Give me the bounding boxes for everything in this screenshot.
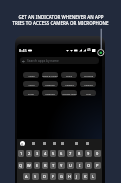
button[interactable]: 2: [26, 150, 32, 157]
staticText: Google Meet: [62, 92, 77, 95]
staticText: 4: [44, 151, 47, 156]
staticText: 6: [60, 151, 63, 156]
staticText: Alarm: [28, 74, 35, 77]
staticText: 8: [78, 151, 81, 156]
button[interactable]: Camera: [61, 81, 77, 87]
staticText: 0: [96, 151, 99, 156]
staticText: P: [96, 163, 99, 168]
staticText: L: [92, 174, 95, 179]
staticText: S: [34, 174, 37, 179]
button[interactable]: I: [76, 162, 83, 169]
staticText: W: [27, 163, 31, 168]
staticText: Black & White: [42, 74, 58, 77]
button[interactable]: Alarm: [23, 72, 39, 78]
staticText: T: [52, 163, 55, 168]
staticText: 1: [20, 151, 23, 156]
button[interactable]: Duo: [80, 90, 96, 96]
staticText: Y: [60, 163, 63, 168]
staticText: Weather: [45, 83, 55, 86]
staticText: Search apps by name: [27, 59, 59, 63]
staticText: Clock: [66, 74, 72, 77]
button[interactable]: A: [23, 173, 30, 180]
button[interactable]: T: [50, 162, 56, 169]
staticText: 8:45: [19, 48, 27, 53]
staticText: G: [21, 142, 24, 146]
button[interactable]: U: [67, 162, 74, 169]
staticText: Q: [19, 163, 23, 168]
button[interactable]: L: [90, 173, 96, 180]
button[interactable]: 7: [67, 150, 74, 157]
button[interactable]: S: [32, 173, 39, 180]
staticText: D: [43, 174, 46, 179]
button[interactable]: Contact: [80, 81, 96, 87]
staticText: Meeting: [45, 92, 55, 95]
button[interactable]: W: [26, 162, 32, 169]
button[interactable]: D: [41, 173, 48, 180]
button[interactable]: E: [34, 162, 40, 169]
button[interactable]: Black & White: [42, 72, 58, 78]
button[interactable]: 9: [85, 150, 92, 157]
staticText: Calcu: [28, 83, 35, 86]
button[interactable]: R: [42, 162, 48, 169]
staticText: U: [69, 163, 72, 168]
staticText: E: [36, 163, 39, 168]
button[interactable]: 0: [94, 150, 101, 157]
staticText: Camera: [65, 83, 74, 86]
staticText: H: [68, 174, 71, 179]
button[interactable]: 3: [34, 150, 40, 157]
staticText: J: [76, 174, 78, 179]
button[interactable]: 5: [50, 150, 56, 157]
button[interactable]: Search apps by name: [20, 57, 99, 64]
staticText: O: [87, 163, 91, 168]
button[interactable]: G: [58, 173, 64, 180]
button[interactable]: 6: [58, 150, 65, 157]
staticText: 3: [36, 151, 39, 156]
staticText: Drive: [28, 92, 34, 95]
button[interactable]: 1: [18, 150, 24, 157]
button[interactable]: O: [85, 162, 92, 169]
button[interactable]: Google: [20, 141, 25, 146]
staticText: 2: [28, 151, 31, 156]
button[interactable]: Weather: [42, 81, 58, 87]
staticText: K: [84, 174, 87, 179]
staticText: 7: [69, 151, 72, 156]
staticText: F: [52, 174, 55, 179]
button[interactable]: Meeting: [42, 90, 58, 96]
staticText: Duo: [86, 92, 91, 95]
staticText: G: [60, 174, 63, 179]
button[interactable]: Chrome: [80, 72, 96, 78]
button[interactable]: K: [82, 173, 88, 180]
button[interactable]: Drive: [23, 90, 39, 96]
button[interactable]: Q: [18, 162, 24, 169]
button[interactable]: Calcu: [23, 81, 39, 87]
staticText: A: [25, 174, 28, 179]
staticText: TRIES TO ACCESS CAMERA OR MICROPHONE: [12, 20, 109, 26]
staticText: R: [44, 163, 47, 168]
staticText: 5: [52, 151, 55, 156]
staticText: 45: [87, 48, 91, 52]
button[interactable]: Y: [58, 162, 65, 169]
button[interactable]: 4: [42, 150, 48, 157]
button[interactable]: J: [74, 173, 80, 180]
staticText: 9: [87, 151, 90, 156]
staticText: Contact: [84, 83, 93, 86]
button[interactable]: 8: [76, 150, 83, 157]
button[interactable]: P: [94, 162, 101, 169]
staticText: GET AN INDICATOR WHENEVER AN APP: [18, 14, 104, 20]
staticText: Chrome: [84, 74, 93, 77]
button[interactable]: Google Meet: [61, 90, 77, 96]
button[interactable]: H: [66, 173, 72, 180]
button[interactable]: Clock: [61, 72, 77, 78]
button[interactable]: F: [50, 173, 56, 180]
staticText: I: [79, 163, 81, 168]
